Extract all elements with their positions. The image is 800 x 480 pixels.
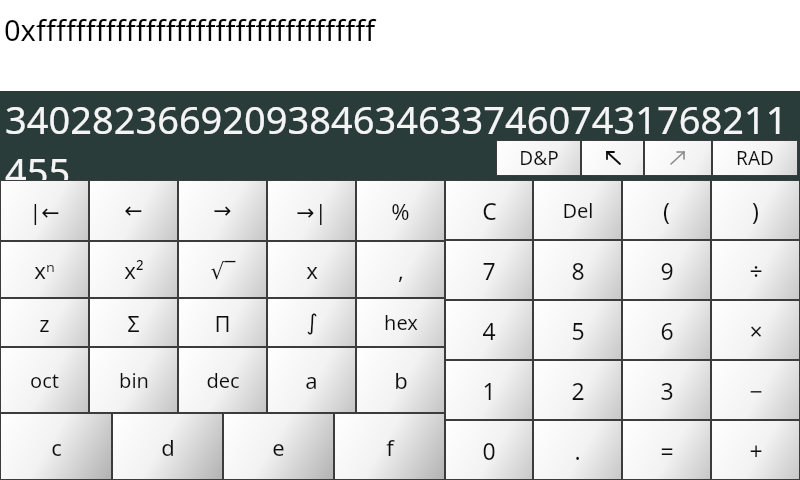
staticText: Π [214,308,231,338]
staticText: 4 [482,315,496,346]
button[interactable]: ) [712,181,799,239]
button[interactable]: + [712,421,799,479]
staticText: 2 [571,375,585,406]
button[interactable]: ← [90,181,177,240]
button[interactable]: Σ [90,299,177,346]
staticText: b [394,365,408,395]
button[interactable]: oct [1,348,88,412]
staticText: f [386,432,394,462]
button[interactable]: 9 [623,241,710,299]
staticText: Del [562,197,594,224]
button[interactable]: − [712,361,799,419]
staticText: → [213,198,232,224]
button[interactable]: 8 [534,241,621,299]
staticText: ( [663,195,670,226]
staticText: e [272,432,285,462]
staticText: √‾ [210,255,236,285]
button[interactable]: 1 [446,361,532,419]
staticText: c [51,432,62,462]
button[interactable]: Undo [582,141,643,175]
staticText: 6 [660,315,674,346]
staticText: × [749,315,763,346]
staticText: a [305,365,318,395]
staticText: →| [296,196,327,226]
button[interactable]: . [534,421,621,479]
button[interactable]: xⁿ [1,242,88,297]
button[interactable]: c [1,414,111,479]
button[interactable]: e [224,414,333,479]
staticText: ) [752,195,759,226]
button[interactable]: 4 [446,301,532,359]
staticText: dec [206,367,240,394]
staticText: 0 [482,435,496,466]
button[interactable]: |← [1,181,88,240]
button[interactable]: 3 [623,361,710,419]
staticText: C [482,195,497,226]
staticText: RAD [736,145,774,171]
staticText: 1 [482,375,496,406]
button[interactable]: , [357,242,444,297]
button[interactable]: 2 [534,361,621,419]
staticText: ÷ [749,255,763,286]
staticText: + [749,435,763,466]
button[interactable]: x² [90,242,177,297]
button[interactable]: bin [90,348,177,412]
staticText: D&P [519,145,559,171]
button[interactable]: a [268,348,355,412]
button[interactable]: z [1,299,88,346]
staticText: , [398,255,404,285]
staticText: . [574,435,581,466]
button[interactable]: d [113,414,222,479]
button[interactable]: ÷ [712,241,799,299]
staticText: Σ [127,308,140,338]
staticText: 8 [571,255,585,286]
staticText: 3 [660,375,674,406]
staticText: ← [124,198,143,224]
staticText: oct [30,367,59,394]
button[interactable]: = [623,421,710,479]
staticText: hex [384,309,418,336]
staticText: xⁿ [34,255,55,285]
staticText: x [306,255,318,285]
button[interactable]: hex [357,299,444,346]
staticText: = [660,435,674,466]
button[interactable]: C [446,181,532,239]
button[interactable]: % [357,181,444,240]
button[interactable]: Π [179,299,266,346]
button[interactable]: 5 [534,301,621,359]
button[interactable]: Del [534,181,621,239]
button[interactable]: RAD [713,141,797,175]
staticText: % [391,196,410,226]
button[interactable]: 0 [446,421,532,479]
button[interactable]: × [712,301,799,359]
staticText: x² [124,255,144,285]
button[interactable]: ∫ [268,299,355,346]
button[interactable]: →| [268,181,355,240]
button[interactable]: b [357,348,444,412]
staticText: 0xffffffffffffffffffffffffffffffffff [4,10,376,49]
button[interactable]: D&P [497,141,580,175]
staticText: 7 [482,255,496,286]
staticText: |← [29,196,60,226]
staticText: bin [119,367,149,394]
staticText: d [161,432,175,462]
staticText: 9 [660,255,674,286]
button[interactable]: f [335,414,444,479]
staticText: ∫ [306,310,318,336]
button[interactable]: dec [179,348,266,412]
button[interactable]: x [268,242,355,297]
button[interactable]: √‾ [179,242,266,297]
button[interactable]: → [179,181,266,240]
button[interactable]: Redo [645,141,711,175]
staticText: 5 [571,315,585,346]
staticText: z [39,308,50,338]
staticText: 340282366920938463463374607431768211455 [5,93,800,180]
staticText: − [749,375,763,406]
button[interactable]: 6 [623,301,710,359]
button[interactable]: ( [623,181,710,239]
button[interactable]: 7 [446,241,532,299]
